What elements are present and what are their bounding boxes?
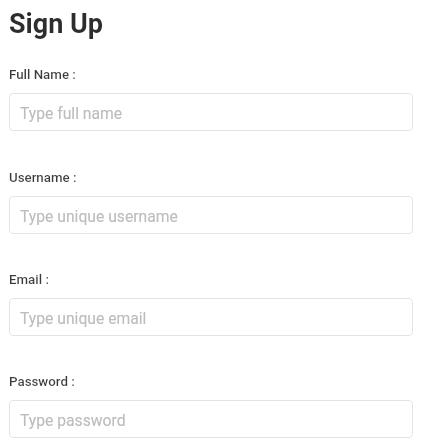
button[interactable]: Type unique email: [9, 298, 413, 336]
staticText: Username :: [9, 170, 77, 186]
staticText: Email :: [9, 272, 49, 288]
staticText: Sign Up: [9, 8, 103, 40]
staticText: Password :: [9, 374, 75, 390]
button[interactable]: Type password: [9, 400, 413, 438]
button[interactable]: Type unique username: [9, 196, 413, 234]
staticText: Type password: [20, 411, 126, 429]
staticText: Type full name: [20, 104, 123, 122]
staticText: Full Name :: [9, 67, 76, 83]
button[interactable]: Type full name: [9, 93, 413, 131]
staticText: Type unique email: [20, 309, 147, 327]
staticText: Type unique username: [20, 207, 178, 225]
